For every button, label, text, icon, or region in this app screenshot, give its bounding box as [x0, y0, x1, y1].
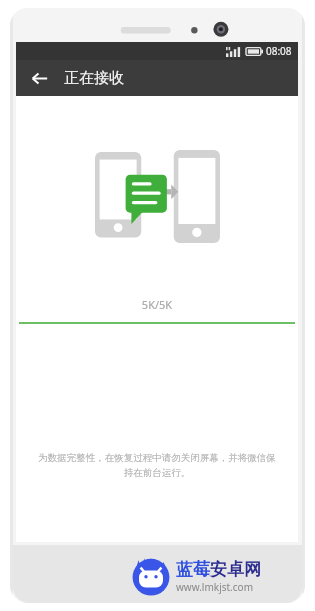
staticText: 安卓网 — [210, 559, 261, 580]
staticText: www.lmkjst.com — [176, 580, 253, 594]
staticText: 08:08 — [266, 44, 292, 58]
staticText: 蓝莓 — [176, 559, 210, 580]
staticText: 为数据完整性，在恢复过程中请勿关闭屏幕，并将微信保 持在前台运行。 — [26, 452, 288, 479]
staticText: 5K/5K — [16, 297, 298, 312]
button[interactable]: Back — [24, 63, 54, 93]
staticText: 正在接收 — [64, 69, 124, 88]
